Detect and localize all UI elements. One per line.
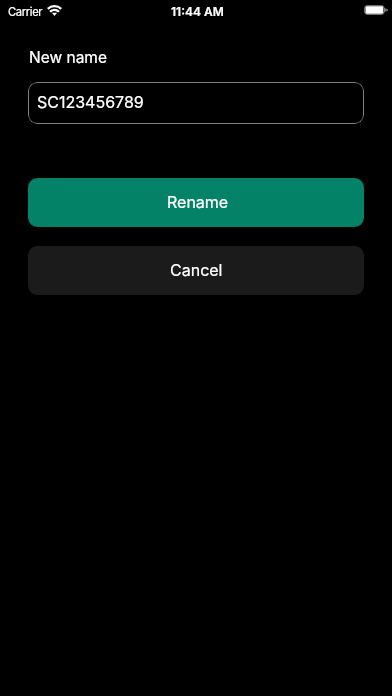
button[interactable]: SC123456789 (28, 82, 364, 124)
staticText: Cancel (170, 260, 223, 279)
staticText: Carrier (8, 5, 43, 19)
button[interactable]: Cancel (28, 246, 364, 295)
other: Battery full (364, 5, 388, 15)
staticText: New name (29, 48, 107, 67)
staticText: SC123456789 (37, 92, 144, 111)
staticText: Rename (167, 192, 229, 211)
staticText: 11:44 AM (171, 4, 224, 19)
other: Wi-Fi (47, 5, 62, 16)
button[interactable]: Rename (28, 178, 364, 227)
